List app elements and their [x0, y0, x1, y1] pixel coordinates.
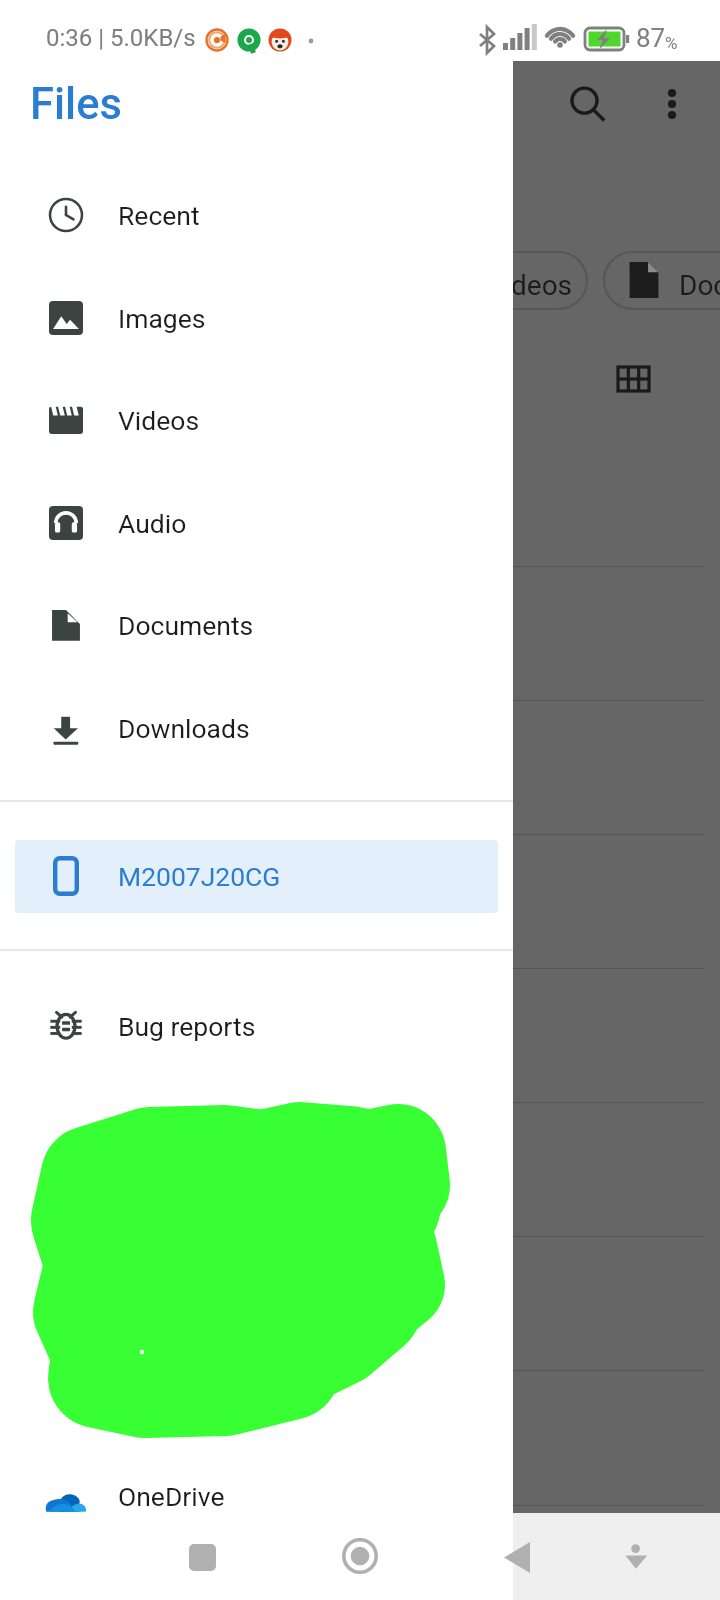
staticText: Bug reports [118, 1011, 256, 1042]
button[interactable]: Recents [172, 1527, 232, 1587]
button[interactable]: Home [330, 1526, 390, 1586]
button[interactable]: Downloads [0, 692, 513, 764]
staticText: Doc [679, 269, 720, 302]
button[interactable]: Images [0, 282, 513, 354]
staticText: OneDrive [118, 1481, 225, 1512]
staticText: M2007J20CG [118, 861, 281, 892]
staticText: Downloads [118, 713, 250, 744]
staticText: Images [118, 303, 206, 334]
button[interactable]: Hide keyboard [606, 1522, 666, 1582]
staticText: % [665, 33, 678, 53]
staticText: deos [511, 269, 573, 302]
staticText: Files [30, 79, 122, 130]
staticText: Recent [118, 200, 200, 231]
staticText: Documents [118, 610, 254, 641]
other: Grid view [618, 367, 649, 391]
button[interactable]: Recent [0, 179, 513, 251]
button[interactable]: Audio [0, 487, 513, 559]
staticText: 0:36 | 5.0KB/s [46, 24, 196, 52]
staticText: Videos [118, 405, 200, 436]
staticText: 87 [636, 23, 666, 53]
staticText: Audio [118, 508, 187, 539]
button[interactable]: More options [660, 83, 684, 123]
button[interactable]: Bug reports [0, 990, 513, 1062]
button[interactable]: Documents [0, 589, 513, 661]
button[interactable] [15, 840, 498, 913]
button[interactable]: Back [487, 1527, 547, 1587]
button[interactable]: OneDrive [0, 1460, 513, 1532]
button[interactable]: Videos [0, 384, 513, 456]
button[interactable]: Search [562, 78, 608, 124]
